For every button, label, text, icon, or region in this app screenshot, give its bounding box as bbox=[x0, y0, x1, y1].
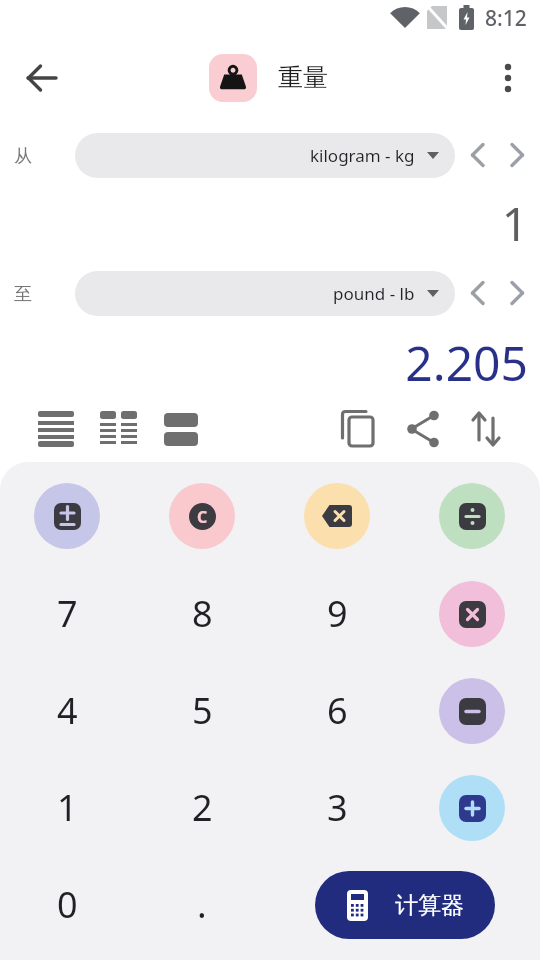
button[interactable] bbox=[439, 678, 505, 744]
staticText: pound - lb bbox=[333, 282, 415, 305]
button[interactable]: 2 bbox=[162, 767, 242, 847]
staticText: kilogram - kg bbox=[310, 144, 415, 167]
button[interactable]: 1 bbox=[27, 767, 107, 847]
button[interactable]: . bbox=[162, 864, 242, 944]
button[interactable] bbox=[406, 410, 440, 448]
button[interactable] bbox=[510, 281, 525, 305]
staticText: 2 bbox=[192, 783, 213, 832]
staticText: 4 bbox=[57, 686, 78, 735]
button[interactable]: 7 bbox=[27, 573, 107, 653]
button[interactable]: kilogram - kg bbox=[75, 133, 455, 178]
staticText: 1 bbox=[57, 783, 78, 832]
button[interactable]: 9 bbox=[297, 573, 377, 653]
button[interactable] bbox=[488, 54, 528, 102]
button[interactable] bbox=[100, 410, 137, 448]
button[interactable]: 6 bbox=[297, 670, 377, 750]
button[interactable] bbox=[439, 483, 505, 549]
button[interactable]: C bbox=[169, 483, 235, 549]
staticText: 7 bbox=[57, 589, 78, 638]
button[interactable] bbox=[164, 410, 198, 448]
staticText: 9 bbox=[327, 589, 348, 638]
button[interactable]: 计算器 bbox=[315, 871, 495, 939]
staticText: 1 bbox=[0, 192, 528, 255]
staticText: 6 bbox=[327, 686, 348, 735]
staticText: 8 bbox=[192, 589, 213, 638]
button[interactable] bbox=[18, 54, 66, 102]
button[interactable]: 8 bbox=[162, 573, 242, 653]
staticText: 8:12 bbox=[485, 4, 527, 33]
staticText: 从 bbox=[14, 145, 32, 168]
button[interactable]: 0 bbox=[27, 864, 107, 944]
button[interactable] bbox=[510, 143, 525, 167]
button[interactable] bbox=[439, 775, 505, 841]
staticText: 2.205 bbox=[0, 330, 528, 395]
button[interactable] bbox=[304, 483, 370, 549]
staticText: 重量 bbox=[278, 62, 328, 93]
button[interactable]: pound - lb bbox=[75, 271, 455, 316]
staticText: . bbox=[197, 880, 207, 929]
button[interactable]: 4 bbox=[27, 670, 107, 750]
button[interactable] bbox=[340, 409, 376, 449]
staticText: 3 bbox=[327, 783, 348, 832]
staticText: 计算器 bbox=[395, 891, 464, 920]
button[interactable] bbox=[38, 410, 74, 448]
button[interactable]: 3 bbox=[297, 767, 377, 847]
staticText: 至 bbox=[14, 283, 32, 306]
button[interactable] bbox=[470, 143, 485, 167]
staticText: 5 bbox=[192, 686, 213, 735]
button[interactable]: 5 bbox=[162, 670, 242, 750]
button[interactable] bbox=[470, 281, 485, 305]
staticText: C bbox=[197, 506, 208, 528]
button[interactable] bbox=[470, 410, 502, 448]
staticText: 0 bbox=[57, 880, 78, 929]
button[interactable] bbox=[34, 483, 100, 549]
button[interactable] bbox=[439, 581, 505, 647]
